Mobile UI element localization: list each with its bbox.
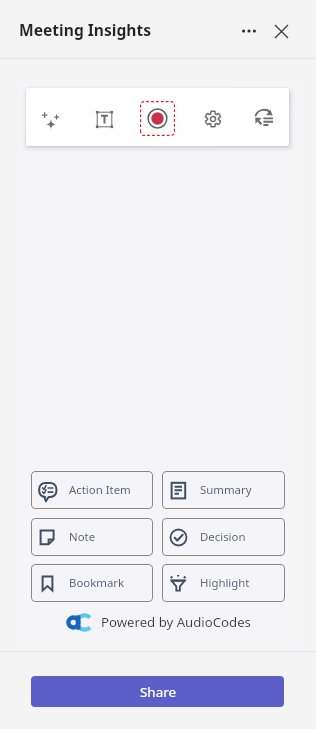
button[interactable]: Transcript xyxy=(78,97,130,137)
button[interactable]: More options xyxy=(234,16,264,46)
button[interactable]: Share xyxy=(31,676,284,707)
button[interactable]: Record xyxy=(140,101,175,136)
button[interactable]: Decision xyxy=(162,518,285,556)
staticText: Summary xyxy=(200,482,252,498)
staticText: Decision xyxy=(200,529,246,545)
staticText: Highlight xyxy=(200,575,250,591)
button[interactable]: Bookmark xyxy=(31,564,153,602)
staticText: Powered by AudioCodes xyxy=(101,613,251,631)
staticText: Bookmark xyxy=(69,575,125,591)
staticText: Note xyxy=(69,529,96,545)
button[interactable]: Insights xyxy=(26,97,78,137)
button[interactable]: Summarize xyxy=(236,97,289,137)
button[interactable]: Highlight xyxy=(162,564,285,602)
staticText: Share xyxy=(140,683,176,701)
button[interactable]: Action Item xyxy=(31,471,153,509)
staticText: Meeting Insights xyxy=(19,19,152,40)
button[interactable]: Note xyxy=(31,518,153,556)
button[interactable]: Settings xyxy=(183,97,236,137)
button[interactable]: Close xyxy=(266,16,296,46)
staticText: Action Item xyxy=(69,482,131,498)
button[interactable]: Summary xyxy=(162,471,285,509)
